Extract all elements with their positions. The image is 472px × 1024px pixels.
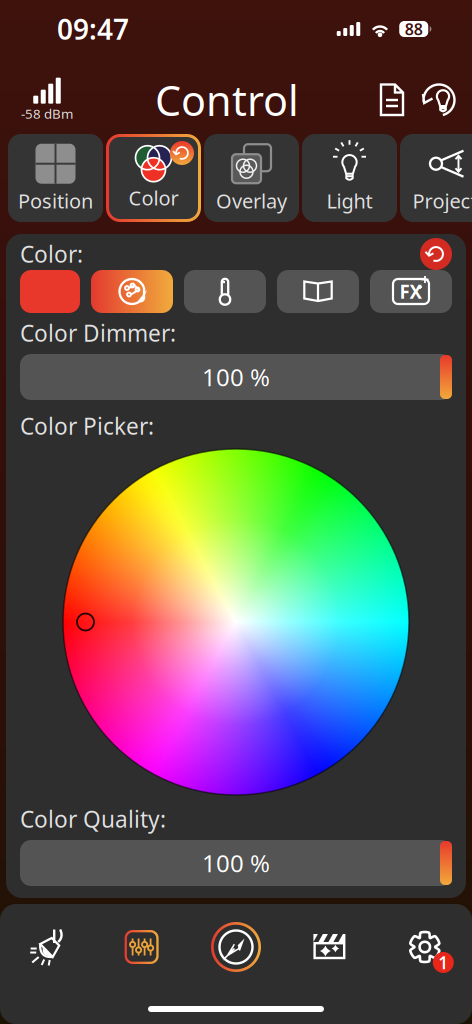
staticText: Light [326, 187, 372, 214]
button[interactable]: Colour temperature [184, 270, 266, 313]
button[interactable]: Color [106, 134, 201, 222]
button[interactable]: Reset lights [414, 72, 464, 128]
button[interactable]: 100 % [20, 840, 452, 886]
button[interactable]: Control [189, 918, 283, 976]
button[interactable]: Fixtures [0, 918, 94, 976]
button[interactable]: Scenes [283, 918, 378, 976]
button[interactable]: 100 % [20, 354, 452, 400]
staticText: Overlay [216, 187, 287, 214]
staticText: Color [128, 184, 178, 211]
button[interactable]: Mixer [94, 918, 189, 976]
button[interactable]: Position [8, 134, 103, 222]
button[interactable]: Settings [378, 918, 472, 976]
staticText: Color: [20, 239, 83, 269]
staticText: Projecti [412, 187, 472, 214]
button[interactable]: Overlay [204, 134, 299, 222]
button[interactable]: Light [302, 134, 397, 222]
button[interactable]: Show document [370, 72, 414, 128]
staticText: 88 [405, 18, 423, 40]
button[interactable]: Projecti [400, 134, 472, 222]
button[interactable]: Colour library [277, 270, 359, 313]
staticText: Color Dimmer: [20, 318, 176, 348]
staticText: Color Picker: [20, 411, 154, 441]
staticText: 100 % [202, 361, 270, 393]
staticText: 09:47 [57, 10, 129, 48]
button[interactable]: Signal strength [10, 72, 84, 128]
staticText: 1 [438, 951, 448, 974]
staticText: 100 % [202, 847, 270, 879]
button[interactable]: Effects [370, 270, 452, 313]
staticText: Color Quality: [20, 804, 166, 834]
staticText: -58 dBm [21, 105, 73, 122]
staticText: Position [18, 187, 93, 214]
button[interactable]: Reset colour [420, 238, 452, 270]
button[interactable]: Current colour [20, 270, 80, 313]
staticText: FX [399, 279, 422, 304]
staticText: Control [155, 73, 299, 127]
button[interactable]: Palette [91, 270, 173, 313]
